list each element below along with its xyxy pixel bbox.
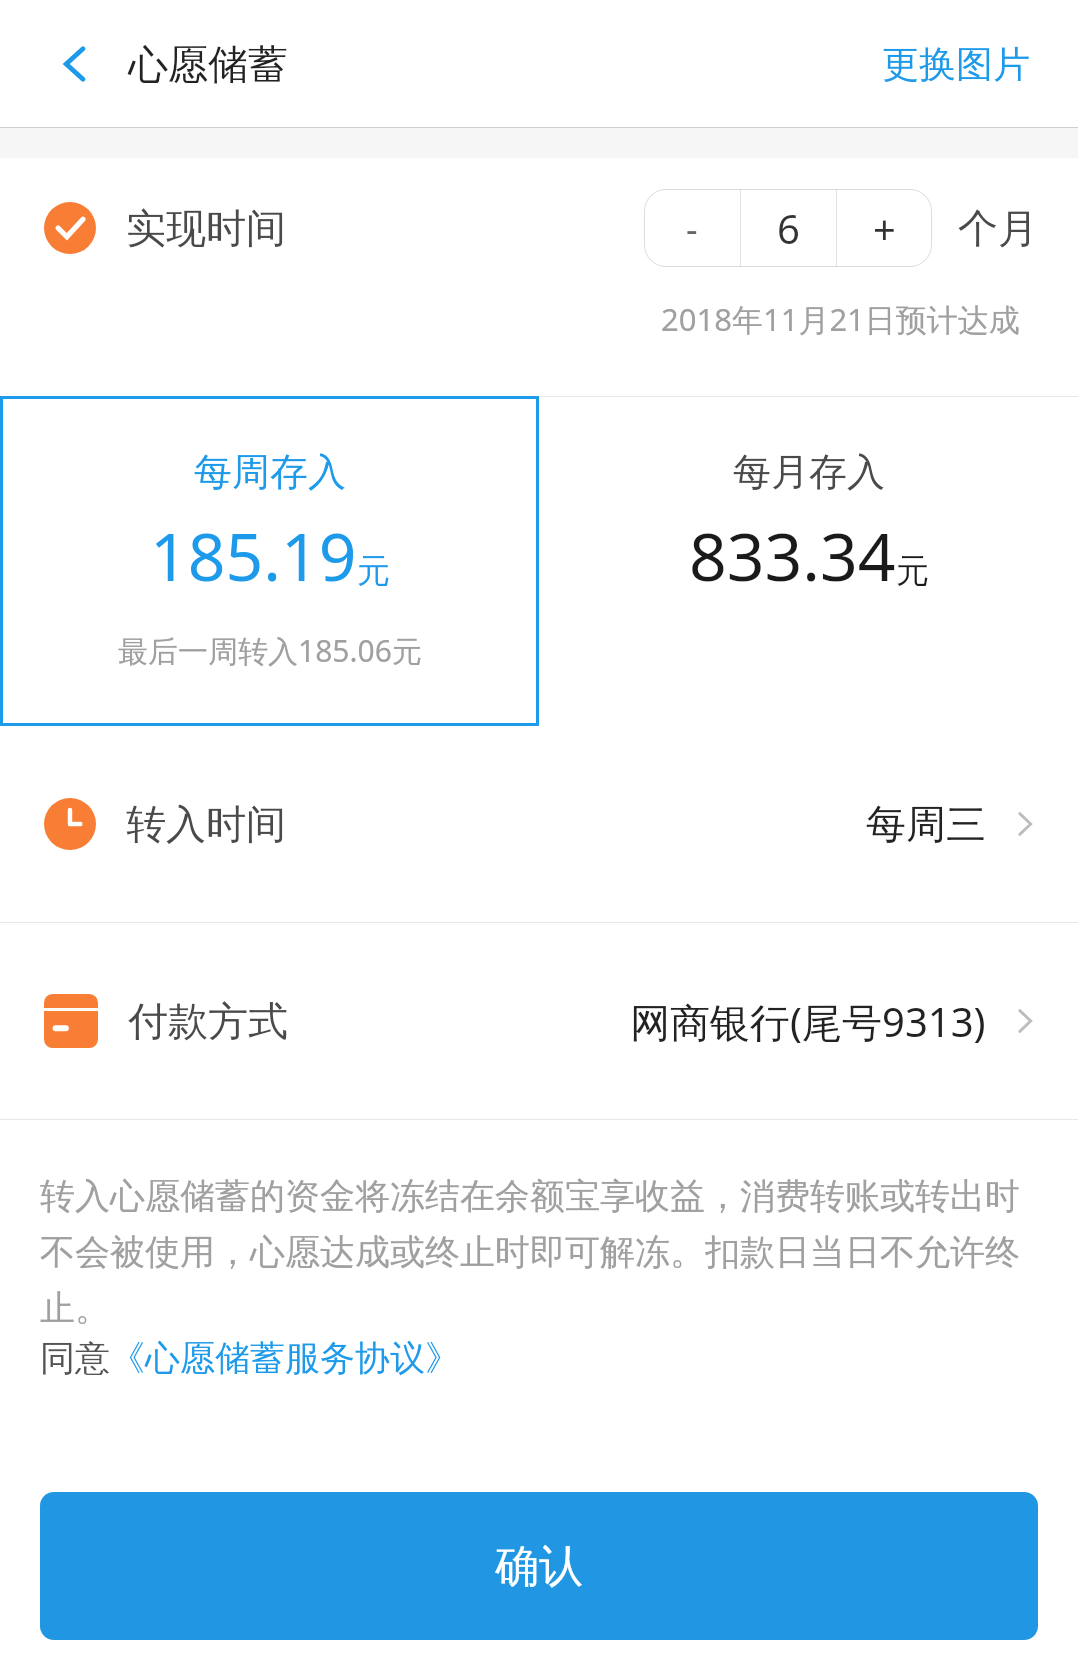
staticText: 2018年11月21日预计达成	[661, 298, 1020, 340]
staticText: 元	[357, 550, 390, 592]
staticText: 个月	[958, 203, 1038, 253]
staticText: +	[873, 201, 896, 255]
staticText: 每周存入	[194, 448, 346, 496]
staticText: 更换图片	[882, 41, 1030, 88]
staticText: 6	[777, 201, 800, 255]
staticText: 转入时间	[126, 799, 286, 849]
staticText: 每月存入	[733, 448, 885, 496]
button[interactable]: 每周存入	[0, 396, 539, 726]
staticText: 转入心愿储蓄的资金将冻结在余额宝享收益，消费转账或转出时不会被使用，心愿达成或终…	[40, 1174, 1038, 1330]
button[interactable]: 每月存入	[539, 396, 1078, 726]
button[interactable]: 实现时间	[0, 158, 1078, 298]
button[interactable]: Increase	[837, 189, 932, 267]
staticText: 833.34	[689, 510, 896, 600]
button[interactable]: Back	[40, 29, 110, 99]
staticText: 同意《心愿储蓄服务协议》	[40, 1336, 460, 1380]
button[interactable]: 同意《心愿储蓄服务协议》	[40, 1336, 460, 1380]
staticText: 付款方式	[128, 996, 288, 1046]
staticText: 实现时间	[126, 203, 286, 253]
button[interactable]: 确认	[40, 1492, 1038, 1640]
staticText: 确认	[495, 1539, 583, 1594]
staticText: 网商银行(尾号9313)	[630, 994, 986, 1049]
staticText: 心愿储蓄	[128, 39, 288, 89]
staticText: -	[686, 204, 698, 253]
staticText: 每周三	[866, 799, 986, 849]
staticText: 元	[896, 550, 929, 592]
button[interactable]: 付款方式	[0, 923, 1078, 1119]
button[interactable]: Decrease	[644, 189, 740, 267]
button[interactable]: 转入时间	[0, 726, 1078, 922]
staticText: 185.19	[150, 510, 357, 600]
staticText: 最后一周转入185.06元	[118, 630, 422, 671]
button[interactable]: 更换图片	[874, 33, 1038, 96]
